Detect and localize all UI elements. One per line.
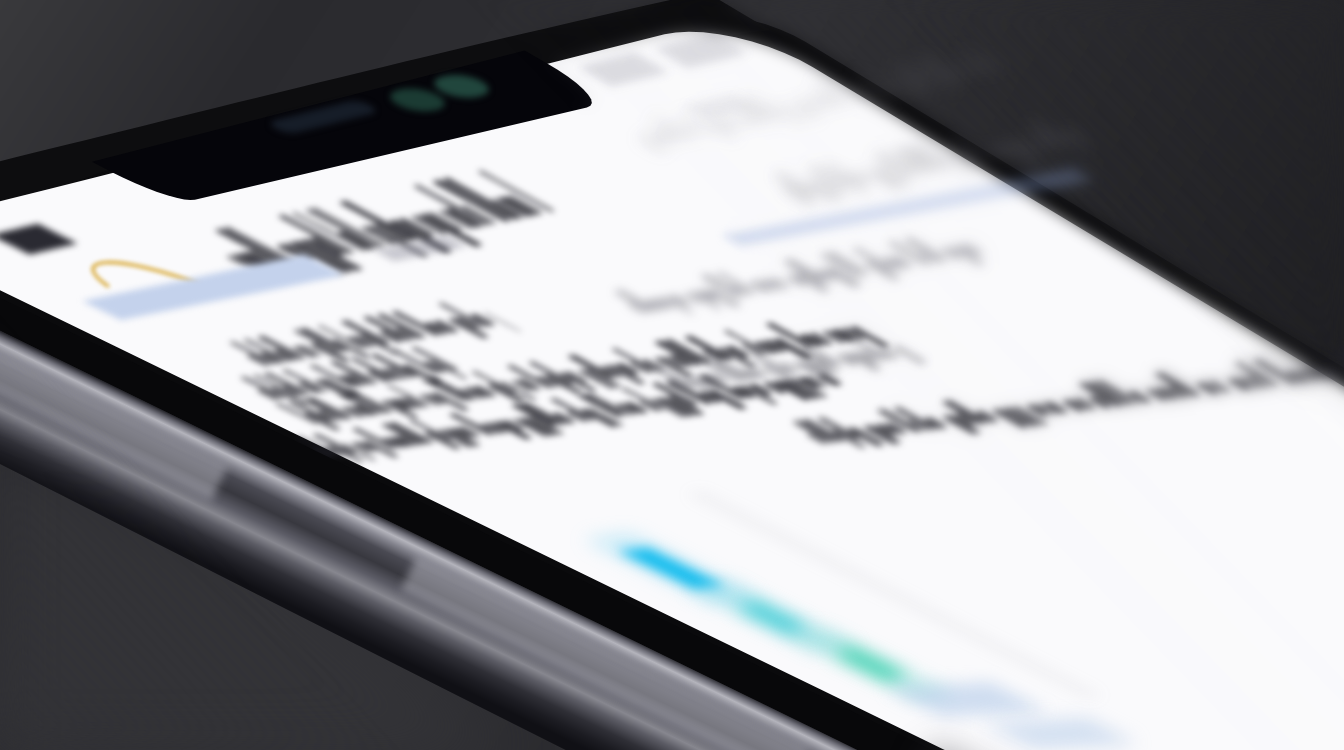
button[interactable]: Phone displaying app screen xyxy=(0,0,1344,750)
